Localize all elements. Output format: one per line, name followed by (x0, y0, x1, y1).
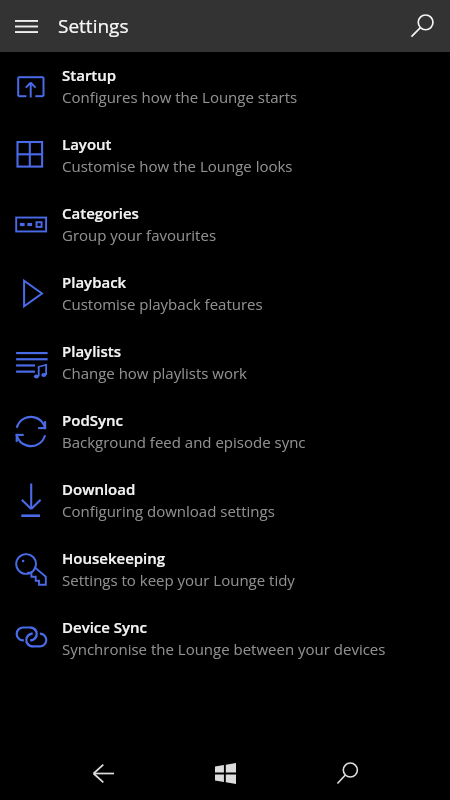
button[interactable]: Playlists (0, 328, 450, 397)
staticText: Download (62, 479, 136, 499)
staticText: Configures how the Lounge starts (62, 87, 298, 107)
staticText: Layout (62, 134, 112, 154)
button[interactable]: Search (403, 6, 443, 46)
staticText: Customise how the Lounge looks (62, 156, 293, 176)
staticText: Synchronise the Lounge between your devi… (62, 639, 386, 659)
button[interactable]: Housekeeping (0, 535, 450, 604)
staticText: PodSync (62, 410, 123, 430)
button[interactable]: Startup (0, 52, 450, 121)
staticText: Playback (62, 272, 127, 292)
staticText: Categories (62, 203, 139, 223)
staticText: Settings (58, 13, 129, 39)
staticText: Configuring download settings (62, 501, 275, 521)
staticText: Playlists (62, 341, 122, 361)
button[interactable]: Device Sync (0, 604, 450, 673)
staticText: Startup (62, 65, 117, 85)
staticText: Customise playback features (62, 294, 263, 314)
staticText: Change how playlists work (62, 363, 247, 383)
staticText: Housekeeping (62, 548, 166, 568)
button[interactable]: Home (202, 750, 248, 796)
button[interactable]: Back (80, 750, 126, 796)
staticText: Group your favourites (62, 225, 217, 245)
staticText: Background feed and episode sync (62, 432, 306, 452)
button[interactable]: PodSync (0, 397, 450, 466)
button[interactable]: Categories (0, 190, 450, 259)
button[interactable]: Download (0, 466, 450, 535)
staticText: Device Sync (62, 617, 148, 637)
button[interactable]: Layout (0, 121, 450, 190)
button[interactable]: Playback (0, 259, 450, 328)
button[interactable]: Search (324, 750, 370, 796)
button[interactable]: Menu (8, 8, 44, 44)
staticText: Settings to keep your Lounge tidy (62, 570, 295, 590)
